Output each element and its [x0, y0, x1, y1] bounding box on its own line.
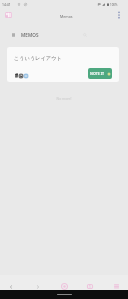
- button[interactable]: Add image: [19, 74, 23, 78]
- staticText: Memos: [60, 14, 73, 19]
- button[interactable]: Back: [0, 275, 24, 290]
- button[interactable]: Add card: [24, 74, 28, 78]
- staticText: こういうレイアウト: [14, 55, 62, 62]
- button[interactable]: Home: [51, 275, 77, 290]
- button[interactable]: Add tag: [15, 73, 18, 78]
- button[interactable]: NOTE IT: [88, 68, 112, 79]
- staticText: 14:41: [2, 2, 11, 7]
- button[interactable]: こういうレイアウト: [7, 47, 119, 82]
- button[interactable]: More options: [114, 10, 124, 20]
- button[interactable]: Menu: [103, 275, 128, 290]
- staticText: NOTE IT: [90, 71, 105, 76]
- button[interactable]: MEMOS: [12, 32, 39, 38]
- staticText: MEMOS: [21, 32, 39, 38]
- staticText: 100%: [110, 3, 118, 7]
- staticText: 1: [89, 285, 91, 289]
- button[interactable]: Reader mode: [5, 12, 12, 18]
- button[interactable]: Tabs: [77, 275, 103, 290]
